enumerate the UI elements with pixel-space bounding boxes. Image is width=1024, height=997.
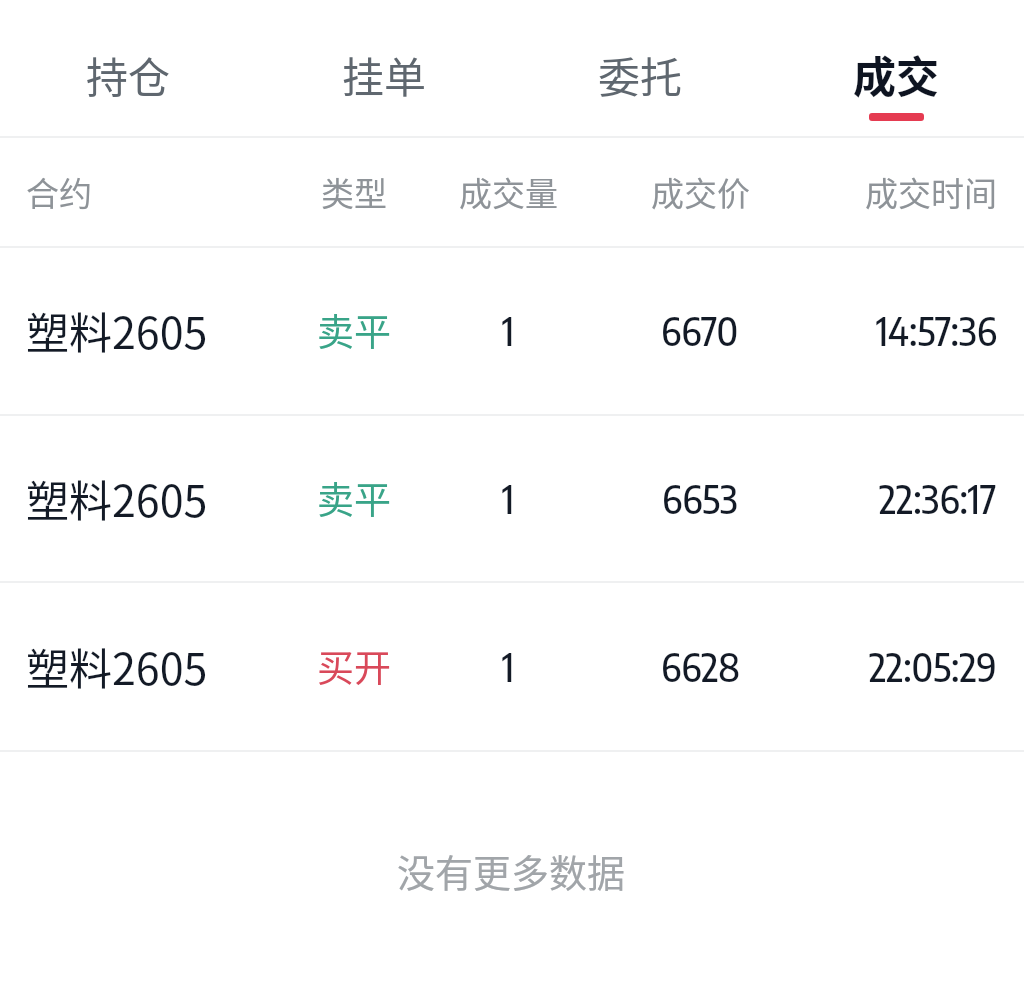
staticText: 22:36:17 [879,474,997,523]
staticText: 成交量 [459,168,558,216]
staticText: 1 [502,306,515,355]
button[interactable]: 塑料2605 [0,582,1024,750]
button[interactable]: 挂单 [256,0,512,136]
staticText: 委托 [598,44,683,105]
button[interactable]: 塑料2605 [0,415,1024,581]
staticText: 持仓 [86,44,171,105]
staticText: 成交时间 [865,168,997,216]
staticText: 没有更多数据 [397,843,626,898]
button[interactable]: 成交 [768,0,1024,136]
staticText: 类型 [321,168,387,216]
staticText: 成交价 [651,168,750,216]
staticText: 塑料2605 [26,299,208,361]
staticText: 卖平 [317,303,391,357]
staticText: 6628 [661,642,740,691]
staticText: 14:57:36 [876,306,997,355]
staticText: 合约 [26,168,92,216]
staticText: 成交 [853,43,939,105]
staticText: 卖平 [317,471,391,525]
staticText: 塑料2605 [26,467,208,529]
button[interactable]: 委托 [512,0,768,136]
staticText: 1 [502,642,515,691]
button[interactable]: 持仓 [0,0,256,136]
button[interactable]: 塑料2605 [0,247,1024,414]
staticText: 6670 [661,306,739,355]
staticText: 6653 [662,474,738,523]
staticText: 挂单 [342,44,427,105]
staticText: 买开 [317,639,391,693]
staticText: 22:05:29 [869,642,997,691]
staticText: 1 [502,474,515,523]
staticText: 塑料2605 [26,635,208,697]
